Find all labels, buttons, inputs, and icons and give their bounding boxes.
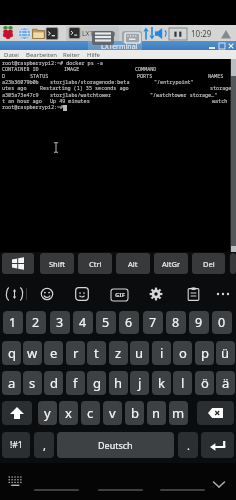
button[interactable] bbox=[216, 292, 230, 296]
staticText: Datei bbox=[4, 51, 19, 59]
staticText: h bbox=[114, 374, 123, 392]
button[interactable]: q bbox=[2, 341, 21, 365]
button[interactable]: p bbox=[195, 341, 214, 365]
button[interactable]: LXTermina bbox=[66, 26, 119, 41]
staticText: 5 bbox=[102, 314, 110, 331]
button[interactable]: Alt bbox=[116, 253, 150, 274]
button[interactable] bbox=[201, 432, 234, 458]
staticText: LXTerminal bbox=[101, 42, 138, 51]
button[interactable]: Datei bbox=[1, 50, 21, 59]
staticText: m bbox=[172, 404, 185, 422]
button[interactable]: f bbox=[66, 371, 85, 395]
button[interactable]: 3 bbox=[50, 311, 70, 334]
button[interactable]: 2 bbox=[26, 311, 46, 334]
button[interactable] bbox=[98, 489, 143, 491]
button[interactable] bbox=[45, 25, 59, 41]
button[interactable]: o bbox=[173, 341, 192, 365]
button[interactable] bbox=[92, 31, 114, 45]
button[interactable]: 7 bbox=[143, 311, 163, 334]
button[interactable]: b bbox=[125, 401, 144, 425]
button[interactable]: !#1 bbox=[2, 432, 30, 458]
button[interactable]: u bbox=[130, 341, 149, 365]
staticText: s bbox=[29, 374, 36, 392]
staticText: q bbox=[8, 344, 16, 362]
button[interactable] bbox=[2, 401, 32, 425]
button[interactable] bbox=[1, 25, 15, 41]
button[interactable]: 6 bbox=[119, 311, 139, 334]
button[interactable] bbox=[2, 253, 34, 274]
staticText: 10:29 bbox=[191, 28, 212, 39]
button[interactable]: a bbox=[2, 371, 21, 395]
staticText: a305a73e47c9 bbox=[2, 92, 39, 99]
button[interactable]: r bbox=[66, 341, 85, 365]
button[interactable]: c bbox=[81, 401, 100, 425]
button[interactable]: g bbox=[87, 371, 106, 395]
staticText: "/watchtower storage…" bbox=[150, 92, 218, 99]
button[interactable]: 0 bbox=[212, 311, 232, 334]
button[interactable]: e bbox=[44, 341, 63, 365]
button[interactable] bbox=[40, 287, 54, 301]
staticText: IMAGE bbox=[64, 66, 80, 73]
button[interactable]: x bbox=[59, 401, 78, 425]
button[interactable] bbox=[31, 25, 46, 41]
button[interactable]: y bbox=[38, 401, 57, 425]
staticText: CONTAINER ID bbox=[2, 66, 39, 73]
button[interactable]: 5 bbox=[96, 311, 116, 334]
staticText: w bbox=[27, 344, 38, 362]
button[interactable]: v bbox=[103, 401, 122, 425]
staticText: t an hour ago bbox=[2, 98, 42, 105]
button[interactable]: 9 bbox=[189, 311, 209, 334]
staticText: NAMES bbox=[208, 73, 224, 80]
button[interactable] bbox=[187, 287, 200, 301]
button[interactable]: i bbox=[152, 341, 171, 365]
button[interactable]: Hilfe bbox=[82, 50, 104, 59]
button[interactable] bbox=[34, 489, 79, 491]
button[interactable]: AltGr bbox=[154, 253, 188, 274]
button[interactable]: l bbox=[173, 371, 192, 395]
button[interactable]: j bbox=[130, 371, 149, 395]
button[interactable]: m bbox=[169, 401, 188, 425]
button[interactable]: 1 bbox=[3, 311, 23, 334]
staticText: COMMAND bbox=[135, 66, 157, 73]
button[interactable] bbox=[230, 253, 236, 274]
button[interactable] bbox=[212, 480, 226, 489]
button[interactable]: Reiter bbox=[58, 50, 84, 59]
button[interactable]: Ctrl bbox=[78, 253, 112, 274]
staticText: LXTermina bbox=[82, 29, 116, 38]
staticText: 3 bbox=[56, 314, 64, 331]
button[interactable] bbox=[75, 287, 89, 301]
button[interactable]: z bbox=[109, 341, 128, 365]
button[interactable] bbox=[17, 25, 32, 41]
button[interactable]: ü bbox=[216, 341, 235, 365]
staticText: Reiter bbox=[63, 51, 80, 59]
button[interactable]: ä bbox=[216, 371, 235, 395]
staticText: 2 bbox=[32, 314, 40, 331]
button[interactable]: Deutsch bbox=[57, 432, 174, 458]
button[interactable] bbox=[149, 287, 163, 301]
button[interactable]: s bbox=[23, 371, 42, 395]
button[interactable] bbox=[6, 286, 23, 302]
staticText: root@raspberrypi2:~# docker ps -a bbox=[2, 60, 103, 67]
button[interactable] bbox=[197, 401, 234, 425]
button[interactable]: w bbox=[23, 341, 42, 365]
button[interactable] bbox=[122, 31, 142, 44]
button[interactable]: k bbox=[152, 371, 171, 395]
staticText: d bbox=[50, 374, 58, 392]
button[interactable]: t bbox=[87, 341, 106, 365]
button[interactable]: Shift bbox=[40, 253, 74, 274]
staticText: o bbox=[179, 344, 187, 362]
button[interactable]: , bbox=[34, 432, 54, 458]
button[interactable]: Del bbox=[192, 253, 225, 274]
button[interactable]: GIF bbox=[111, 289, 128, 301]
button[interactable]: n bbox=[147, 401, 166, 425]
button[interactable]: 8 bbox=[166, 311, 186, 334]
staticText: utes ago bbox=[2, 85, 27, 92]
button[interactable]: h bbox=[109, 371, 128, 395]
button[interactable]: d bbox=[44, 371, 63, 395]
button[interactable] bbox=[160, 489, 205, 491]
staticText: Restarting (1) 35 seconds ago bbox=[40, 85, 129, 92]
button[interactable]: ö bbox=[195, 371, 214, 395]
button[interactable]: . bbox=[178, 432, 198, 458]
button[interactable]: Bearbeiten bbox=[22, 50, 62, 59]
button[interactable]: 4 bbox=[73, 311, 93, 334]
